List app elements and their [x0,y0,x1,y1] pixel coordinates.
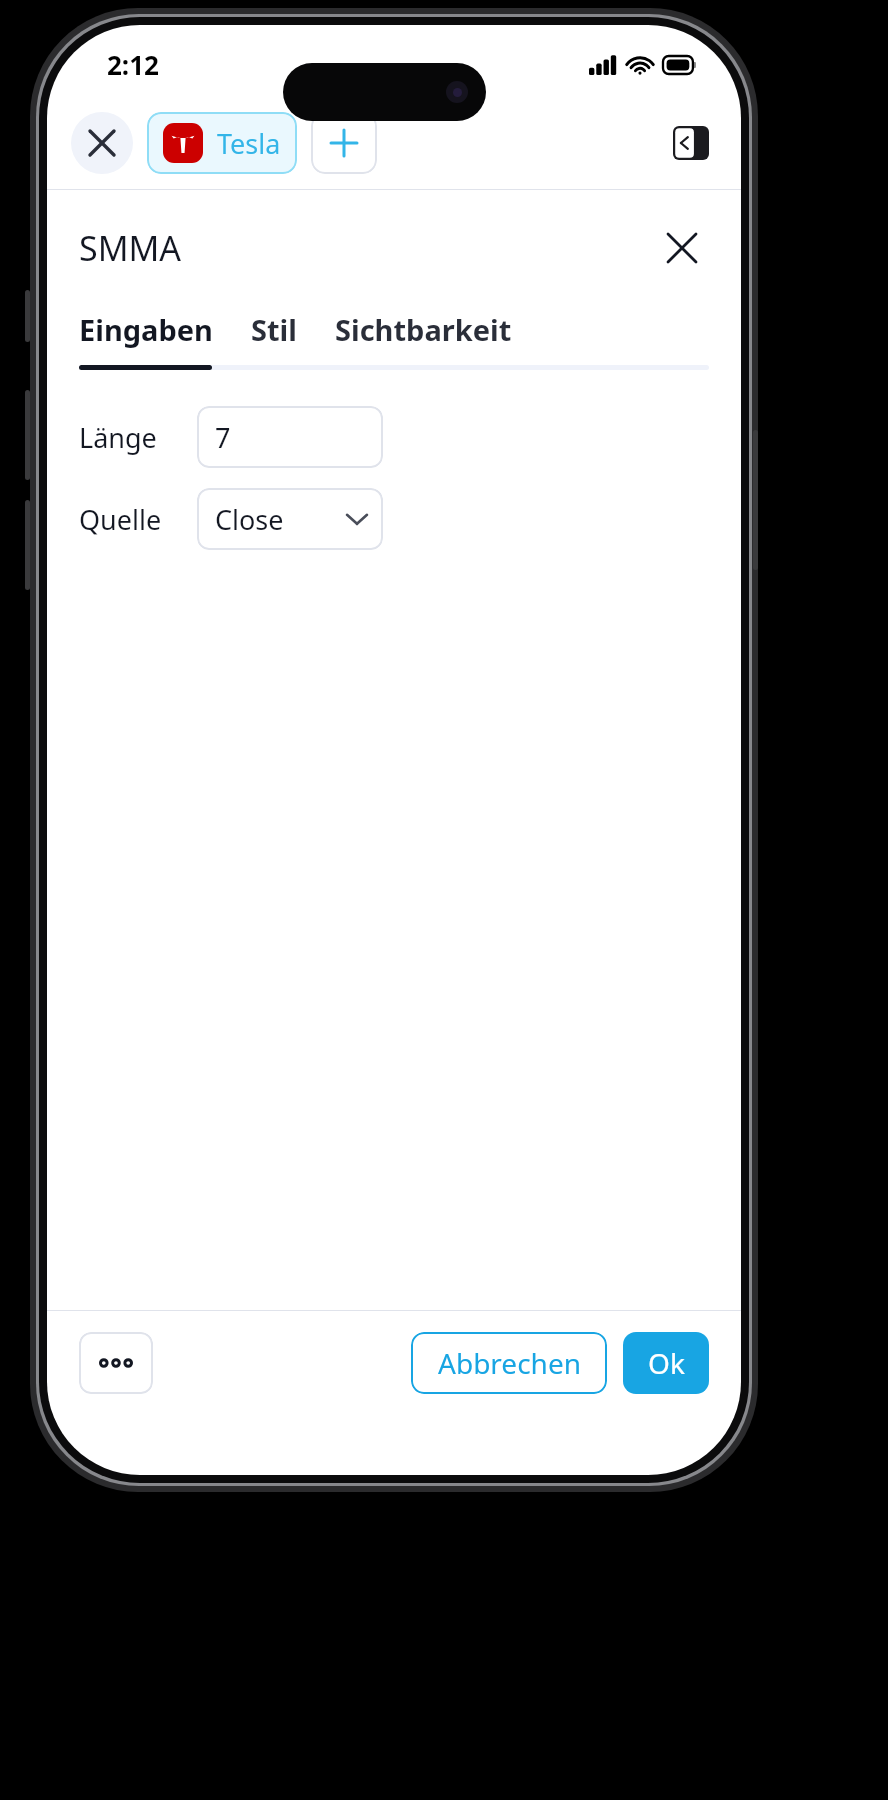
button[interactable]: Seitenleiste [665,117,717,169]
staticText: Sichtbarkeit [335,310,512,349]
button[interactable]: Schließen [71,112,133,174]
button[interactable]: Dialog schließen [655,221,709,275]
staticText: Abbrechen [438,1344,581,1382]
button[interactable]: Sichtbarkeit [335,306,512,353]
button[interactable]: Eingaben [79,306,213,353]
staticText: Ok [648,1344,685,1382]
staticText: Länge [79,419,157,456]
button[interactable]: Ok [623,1332,709,1394]
button[interactable]: Mehr Optionen [79,1332,153,1394]
staticText: Stil [251,310,297,349]
staticText: Quelle [79,501,162,538]
staticText: 2:12 [107,47,159,82]
button[interactable]: Stil [251,306,297,353]
staticText: SMMA [79,225,182,271]
button[interactable]: Abbrechen [411,1332,607,1394]
button[interactable]: 7 [197,406,383,468]
button[interactable]: Tesla [147,112,297,174]
button[interactable]: Neuer Tab [311,112,377,174]
staticText: Tesla [217,125,281,162]
staticText: Eingaben [79,310,213,349]
button[interactable]: Close [197,488,383,550]
staticText: 7 [215,419,231,456]
staticText: Close [215,501,284,538]
